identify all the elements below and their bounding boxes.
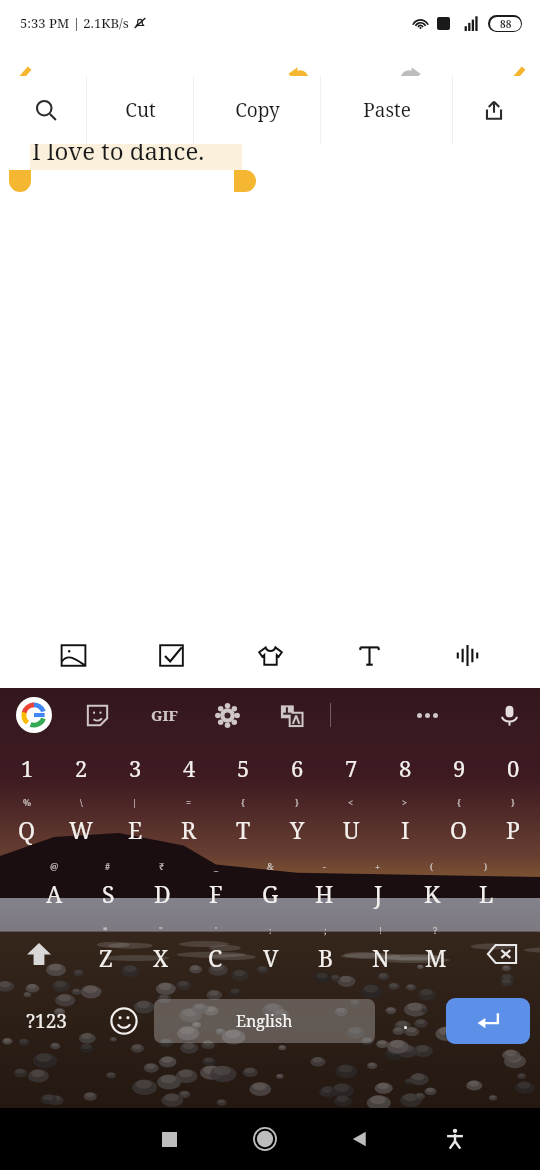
button[interactable]: :: [243, 922, 298, 986]
button[interactable]: Backspace: [463, 922, 540, 986]
button[interactable]: Voice input: [492, 698, 526, 732]
button[interactable]: 0: [486, 742, 540, 794]
button[interactable]: Translate: [274, 698, 308, 732]
button[interactable]: ₹: [135, 858, 189, 922]
button[interactable]: 7: [324, 742, 378, 794]
staticText: V: [263, 942, 279, 973]
staticText: GIF: [151, 705, 178, 725]
button[interactable]: ): [459, 858, 513, 922]
button[interactable]: {: [216, 794, 270, 858]
button[interactable]: Shift: [0, 922, 78, 986]
button[interactable]: |: [108, 794, 162, 858]
button[interactable]: _: [189, 858, 243, 922]
staticText: &: [267, 860, 274, 872]
staticText: W: [69, 814, 94, 845]
button[interactable]: Back: [312, 1108, 407, 1170]
button[interactable]: 9: [432, 742, 486, 794]
button[interactable]: Text format: [343, 629, 395, 681]
button[interactable]: &: [243, 858, 297, 922]
button[interactable]: Voice note: [441, 629, 493, 681]
staticText: ": [159, 924, 163, 936]
staticText: Y: [290, 814, 305, 845]
staticText: J: [374, 878, 383, 909]
button[interactable]: ?123: [0, 986, 93, 1056]
staticText: +: [375, 860, 381, 872]
staticText: {: [241, 796, 245, 808]
button[interactable]: Checklist: [145, 629, 197, 681]
button[interactable]: Copy: [194, 76, 320, 144]
button[interactable]: Accessibility: [407, 1108, 502, 1170]
button[interactable]: ?: [408, 922, 463, 986]
button[interactable]: More: [410, 698, 444, 732]
button[interactable]: >: [378, 794, 432, 858]
staticText: 9: [453, 753, 466, 783]
button[interactable]: Enter: [446, 998, 530, 1044]
staticText: ₹: [159, 860, 165, 872]
button[interactable]: English: [154, 999, 375, 1043]
button[interactable]: .: [375, 986, 436, 1056]
button[interactable]: 6: [270, 742, 324, 794]
button[interactable]: Emoji: [93, 986, 154, 1056]
button[interactable]: 1: [0, 742, 54, 794]
staticText: (: [430, 860, 434, 872]
staticText: Cut: [125, 97, 156, 123]
button[interactable]: @: [27, 858, 81, 922]
button[interactable]: %: [0, 794, 54, 858]
button[interactable]: 3: [108, 742, 162, 794]
staticText: 3: [129, 753, 142, 783]
button[interactable]: 5: [216, 742, 270, 794]
staticText: Z: [99, 942, 113, 973]
staticText: Q: [18, 814, 36, 845]
staticText: 6: [291, 753, 304, 783]
staticText: 8: [399, 753, 412, 783]
button[interactable]: }: [270, 794, 324, 858]
staticText: %: [23, 796, 32, 808]
button[interactable]: 2: [54, 742, 108, 794]
button[interactable]: +: [351, 858, 405, 922]
button[interactable]: (: [405, 858, 459, 922]
button[interactable]: *: [78, 922, 133, 986]
staticText: P: [506, 814, 520, 845]
staticText: N: [372, 942, 390, 973]
button[interactable]: \: [54, 794, 108, 858]
button[interactable]: !: [353, 922, 408, 986]
staticText: |: [132, 796, 138, 808]
staticText: \: [80, 796, 83, 808]
button[interactable]: Sticker: [244, 629, 296, 681]
button[interactable]: Search: [6, 76, 86, 144]
staticText: {: [457, 796, 461, 808]
staticText: 0: [507, 753, 520, 783]
button[interactable]: {: [432, 794, 486, 858]
staticText: T: [236, 814, 251, 845]
staticText: }: [511, 796, 515, 808]
button[interactable]: GIF: [144, 695, 184, 735]
button[interactable]: 4: [162, 742, 216, 794]
staticText: 2: [75, 753, 88, 783]
button[interactable]: =: [162, 794, 216, 858]
staticText: ?123: [26, 1008, 67, 1034]
button[interactable]: ;: [298, 922, 353, 986]
button[interactable]: -: [297, 858, 351, 922]
button[interactable]: Google: [14, 695, 54, 735]
button[interactable]: ': [188, 922, 243, 986]
staticText: K: [424, 878, 441, 909]
button[interactable]: Settings: [210, 698, 244, 732]
button[interactable]: <: [324, 794, 378, 858]
staticText: @: [50, 860, 59, 872]
button[interactable]: Share: [453, 76, 534, 144]
button[interactable]: Stickers: [80, 698, 114, 732]
button[interactable]: #: [81, 858, 135, 922]
button[interactable]: Paste: [321, 76, 452, 144]
staticText: 5: [237, 753, 250, 783]
button[interactable]: Home: [217, 1108, 312, 1170]
staticText: C: [208, 942, 223, 973]
button[interactable]: 8: [378, 742, 432, 794]
button[interactable]: ": [133, 922, 188, 986]
staticText: 4: [183, 753, 196, 783]
button[interactable]: Insert image: [47, 629, 99, 681]
button[interactable]: Cut: [87, 76, 193, 144]
staticText: ;: [324, 924, 327, 936]
staticText: F: [209, 878, 223, 909]
button[interactable]: }: [486, 794, 540, 858]
button[interactable]: Recent apps: [122, 1108, 217, 1170]
